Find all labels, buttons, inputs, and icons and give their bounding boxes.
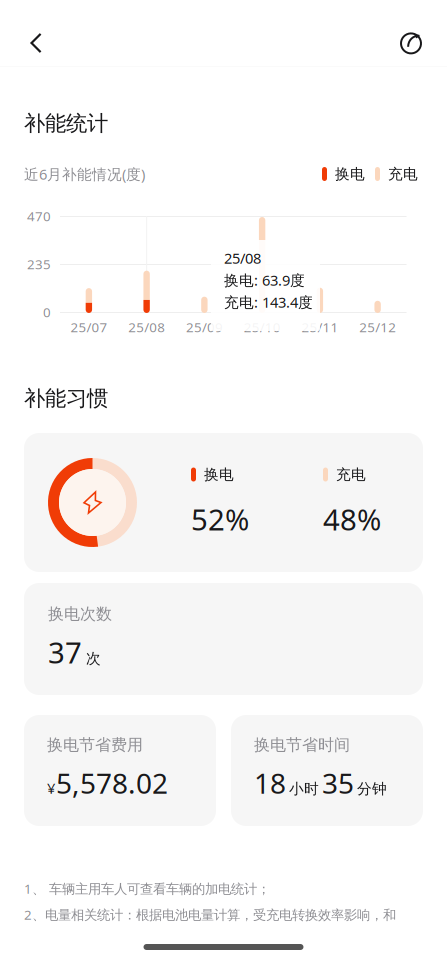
staticText: 换电 [335, 165, 365, 183]
button[interactable]: Share [389, 21, 433, 65]
staticText: 补能统计 [24, 110, 108, 137]
staticText: 换电节省时间 [254, 735, 350, 755]
staticText: ¥ [47, 778, 55, 798]
staticText: 25/09 [186, 318, 223, 336]
staticText: 换电节省费用 [47, 735, 143, 755]
staticText: 52% [191, 499, 249, 538]
staticText: 25/11 [301, 318, 338, 336]
staticText: 25/08 [224, 248, 261, 268]
staticText: 25/10 [244, 318, 281, 336]
staticText: 1、 车辆主用车人可查看车辆的加电统计； [24, 880, 270, 897]
staticText: 37 [48, 632, 82, 671]
staticText: 5,578.02 [56, 764, 168, 802]
staticText: 换电 [204, 465, 234, 483]
staticText: 25/12 [359, 318, 396, 336]
staticText: 2、电量相关统计：根据电池电量计算，受充电转换效率影响，和 [24, 906, 396, 923]
staticText: 25/07 [70, 318, 107, 336]
staticText: 充电: 143.4度 [224, 292, 313, 312]
staticText: 补能习惯 [24, 385, 108, 412]
staticText: 小时 [289, 780, 319, 798]
staticText: 充电 [388, 165, 418, 183]
staticText: 235 [27, 255, 51, 273]
button[interactable]: Back [14, 21, 58, 65]
staticText: 分钟 [357, 780, 387, 798]
staticText: 充电 [336, 465, 366, 483]
staticText: 35 [322, 764, 354, 802]
staticText: 18 [254, 764, 286, 802]
staticText: 0 [43, 303, 51, 321]
staticText: 470 [27, 207, 51, 225]
staticText: 换电次数 [48, 604, 112, 624]
staticText: 25/08 [128, 318, 165, 336]
staticText: 48% [323, 499, 381, 538]
staticText: 近6月补能情况(度) [24, 164, 145, 184]
staticText: 次 [86, 649, 101, 667]
staticText: 换电: 63.9度 [224, 270, 305, 290]
